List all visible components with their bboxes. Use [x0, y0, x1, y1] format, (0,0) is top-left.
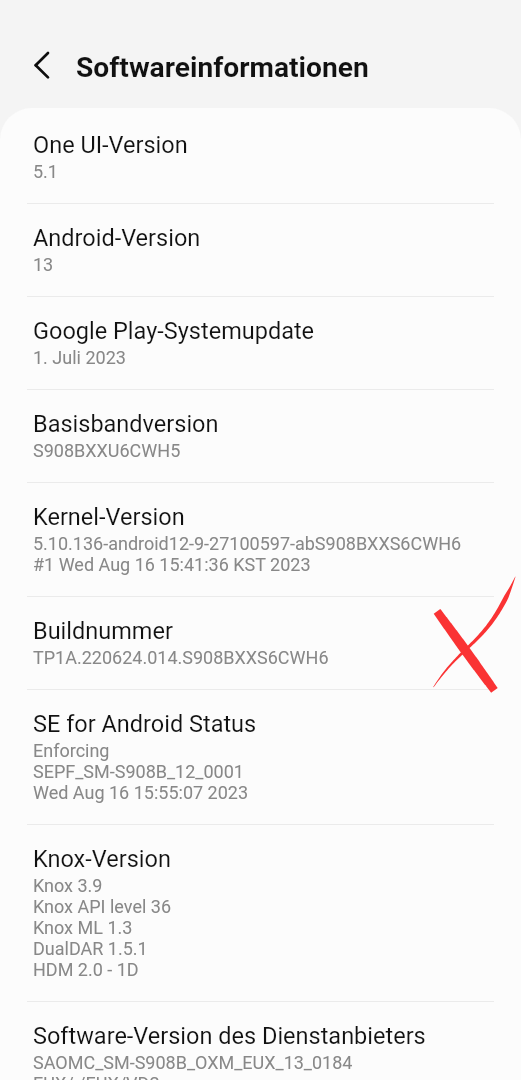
- button[interactable]: Kernel-Version: [0, 483, 521, 596]
- staticText: Basisbandversion: [33, 410, 219, 438]
- staticText: 1. Juli 2023: [33, 347, 126, 368]
- button[interactable]: Software-Version des Dienstanbieters: [0, 1002, 521, 1080]
- button[interactable]: One UI-Version: [0, 108, 521, 203]
- staticText: 13: [33, 254, 54, 275]
- staticText: Software-Version des Dienstanbieters: [33, 1022, 426, 1050]
- staticText: HDM 2.0 - 1D: [33, 959, 139, 980]
- button[interactable]: Basisbandversion: [0, 390, 521, 482]
- staticText: 5.1: [33, 161, 58, 182]
- staticText: Enforcing: [33, 740, 110, 761]
- staticText: SEPF_SM-S908B_12_0001: [33, 761, 244, 782]
- button[interactable]: Knox-Version: [0, 825, 521, 1001]
- button[interactable]: Google Play-Systemupdate: [0, 297, 521, 389]
- staticText: Knox 3.9: [33, 875, 103, 896]
- staticText: Knox-Version: [33, 845, 171, 873]
- staticText: S908BXXU6CWH5: [33, 440, 181, 461]
- staticText: Kernel-Version: [33, 503, 185, 531]
- staticText: Buildnummer: [33, 617, 173, 645]
- button[interactable]: Android-Version: [0, 204, 521, 296]
- button[interactable]: Zurück: [14, 37, 70, 93]
- staticText: Knox ML 1.3: [33, 917, 133, 938]
- button[interactable]: SE for Android Status: [0, 690, 521, 824]
- staticText: Android-Version: [33, 224, 201, 252]
- staticText: EUX/ /EUX/VD2: [33, 1073, 160, 1080]
- staticText: SE for Android Status: [33, 710, 257, 738]
- staticText: #1 Wed Aug 16 15:41:36 KST 2023: [33, 554, 311, 575]
- button[interactable]: Buildnummer: [0, 597, 521, 689]
- staticText: One UI-Version: [33, 131, 188, 159]
- staticText: Wed Aug 16 15:55:07 2023: [33, 782, 249, 803]
- staticText: Knox API level 36: [33, 896, 171, 917]
- staticText: SAOMC_SM-S908B_OXM_EUX_13_0184: [33, 1052, 353, 1073]
- staticText: 5.10.136-android12-9-27100597-abS908BXXS…: [33, 533, 462, 554]
- staticText: DualDAR 1.5.1: [33, 938, 148, 959]
- staticText: Google Play-Systemupdate: [33, 317, 315, 345]
- staticText: Softwareinformationen: [76, 51, 369, 84]
- staticText: TP1A.220624.014.S908BXXS6CWH6: [33, 647, 329, 668]
